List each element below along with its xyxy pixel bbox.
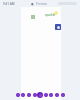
staticText: 9:41 AM [3, 2, 15, 6]
button[interactable]: Action [55, 24, 61, 30]
staticText: Preview [36, 2, 47, 6]
button[interactable]: Page 2 [21, 93, 25, 97]
button[interactable]: Page 4 [33, 93, 37, 97]
button[interactable]: Page 1 [16, 93, 20, 97]
button[interactable]: Page 5 [37, 92, 43, 98]
button[interactable]: Page 8 [55, 93, 59, 97]
button[interactable]: Page 9 [61, 93, 65, 97]
button[interactable]: Page 6 [44, 93, 48, 97]
button[interactable]: Page 7 [49, 93, 53, 97]
staticText: sparkle [45, 13, 56, 17]
button[interactable]: Page 3 [27, 93, 31, 97]
staticText: ● [31, 2, 34, 5]
